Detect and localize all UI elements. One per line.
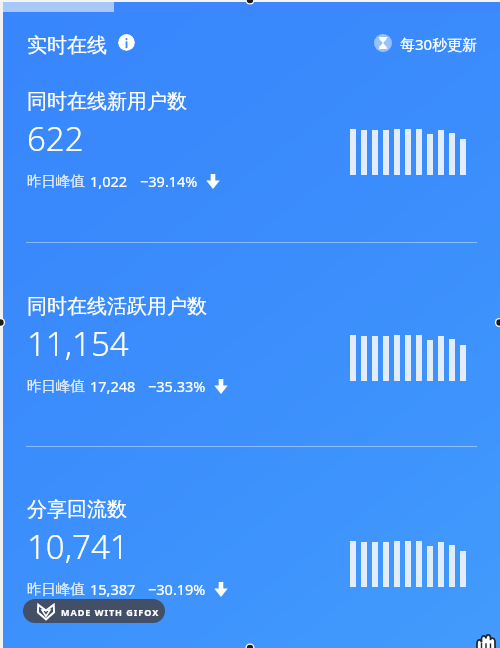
button[interactable]: 实时在线 xyxy=(27,33,107,58)
staticText: 17,248 xyxy=(90,376,136,396)
staticText: 每30秒更新 xyxy=(400,34,478,54)
staticText: 同时在线新用户数 xyxy=(27,89,187,114)
button[interactable]: 每30秒更新 xyxy=(374,22,478,42)
staticText: 昨日峰值 xyxy=(27,580,85,598)
staticText: 10,741 xyxy=(27,524,129,569)
button[interactable]: 分享回流数 xyxy=(27,497,500,599)
staticText: −35.33% xyxy=(148,376,206,396)
button[interactable]: 同时在线新用户数 xyxy=(27,89,500,191)
staticText: 昨日峰值 xyxy=(27,377,85,395)
staticText: −39.14% xyxy=(140,171,198,191)
button[interactable]: Info xyxy=(118,34,135,51)
staticText: 分享回流数 xyxy=(27,497,127,522)
staticText: −30.19% xyxy=(148,579,206,599)
button[interactable]: 同时在线活跃用户数 xyxy=(27,294,500,396)
staticText: 同时在线活跃用户数 xyxy=(27,294,207,319)
staticText: MADE WITH GIFOX xyxy=(61,606,160,618)
staticText: 622 xyxy=(27,116,84,161)
staticText: 11,154 xyxy=(27,321,129,366)
staticText: 15,387 xyxy=(90,579,136,599)
staticText: 昨日峰值 xyxy=(27,172,85,190)
staticText: 实时在线 xyxy=(27,33,107,58)
staticText: 1,022 xyxy=(90,171,128,191)
